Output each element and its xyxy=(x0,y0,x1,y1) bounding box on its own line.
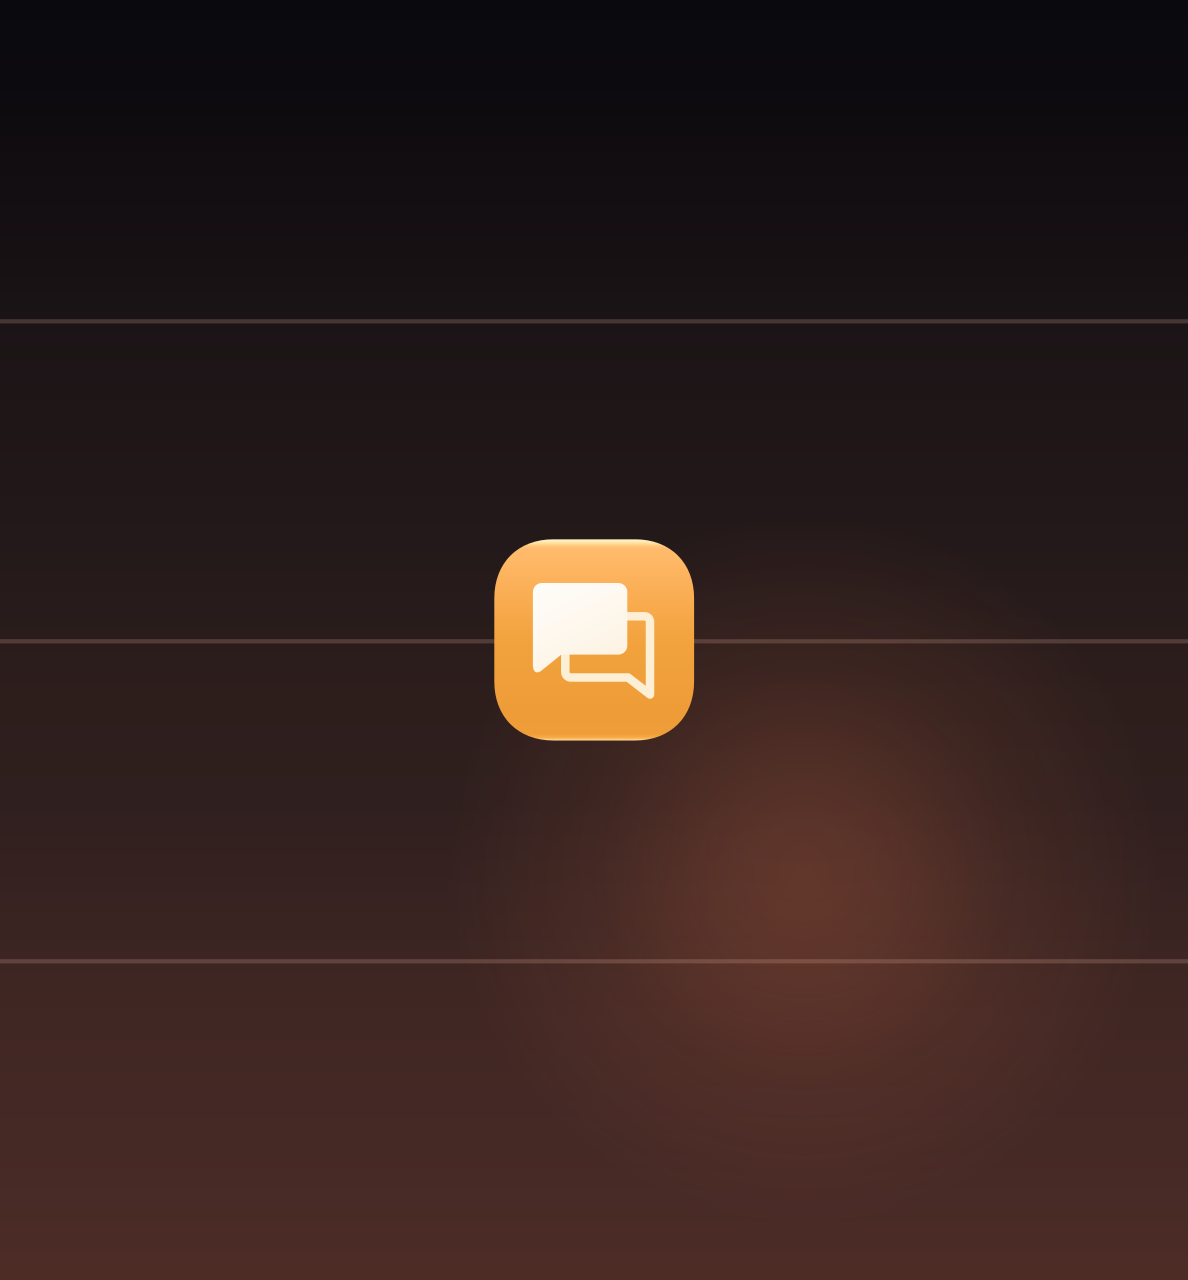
button[interactable]: Messages app xyxy=(494,539,694,740)
